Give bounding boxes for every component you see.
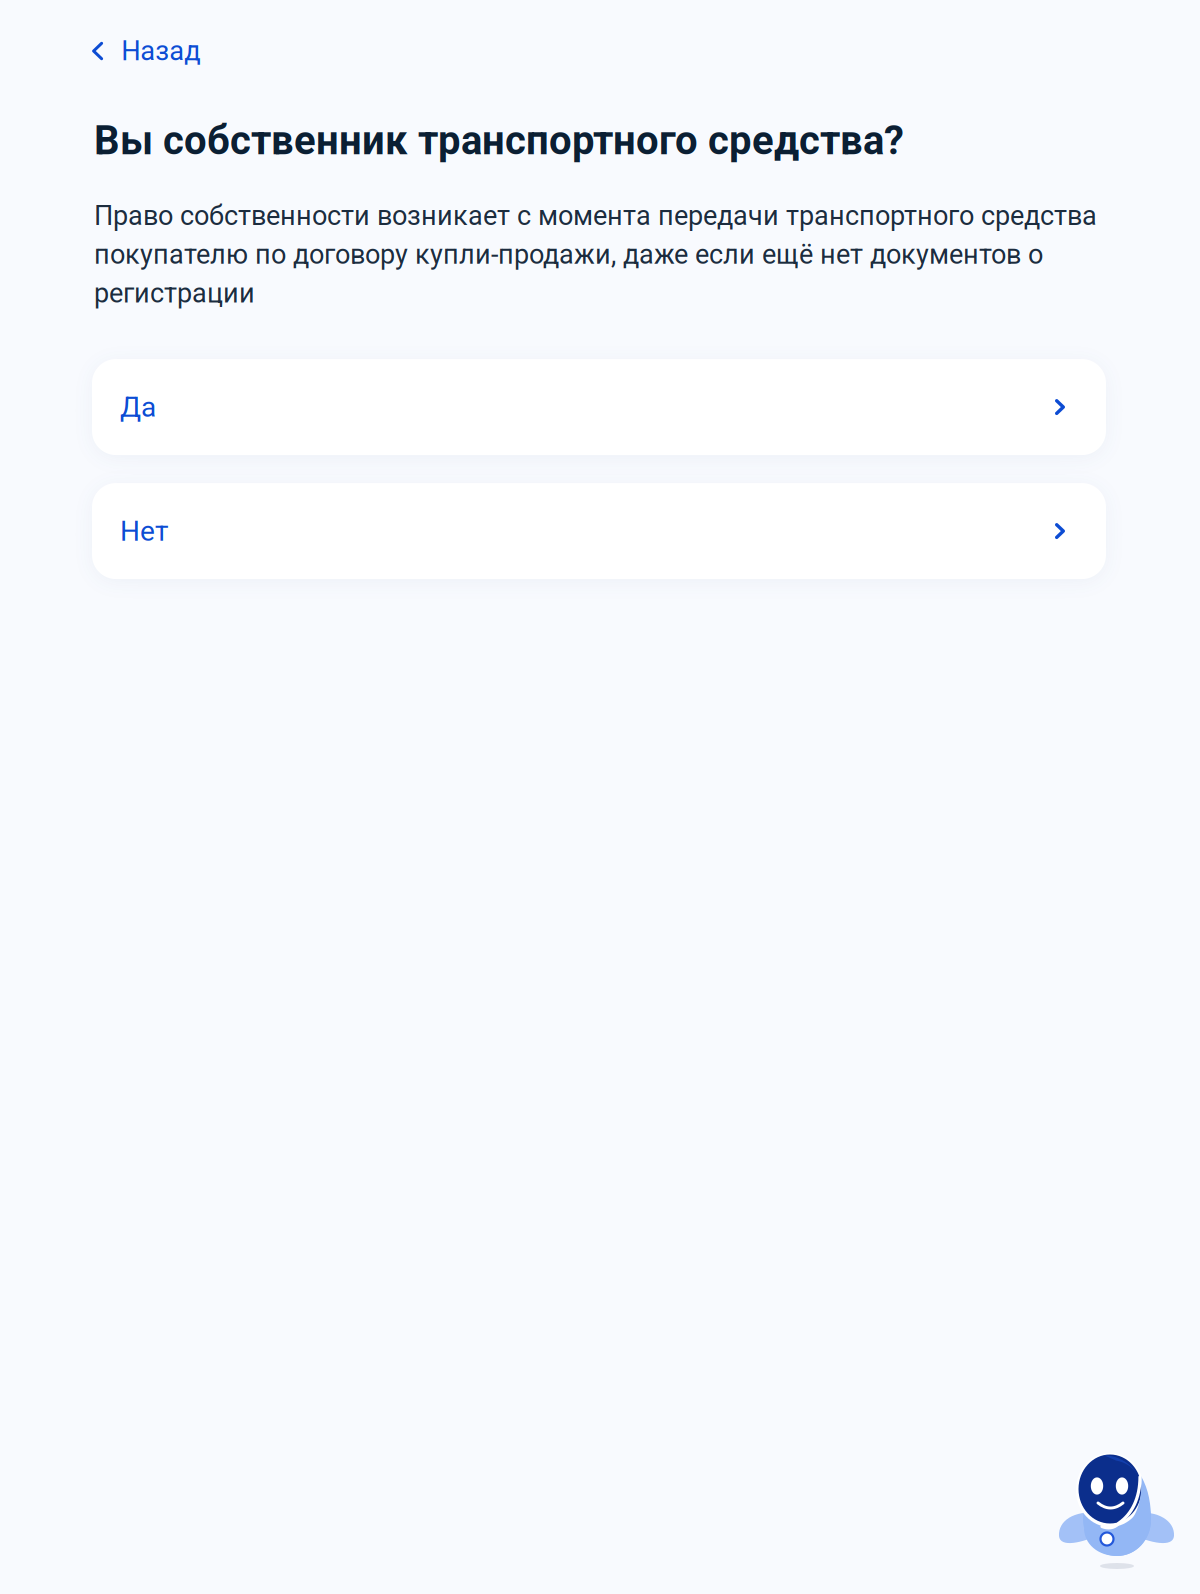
staticText: Нет: [120, 515, 168, 547]
staticText: Да: [120, 391, 156, 423]
button[interactable]: Нет: [92, 483, 1106, 579]
staticText: Назад: [121, 35, 200, 67]
staticText: Право собственности возникает с момента …: [94, 200, 1097, 309]
staticText: Вы собственник транспортного средства?: [94, 117, 904, 164]
button[interactable]: Да: [92, 359, 1106, 455]
button[interactable]: Назад: [0, 23, 228, 79]
